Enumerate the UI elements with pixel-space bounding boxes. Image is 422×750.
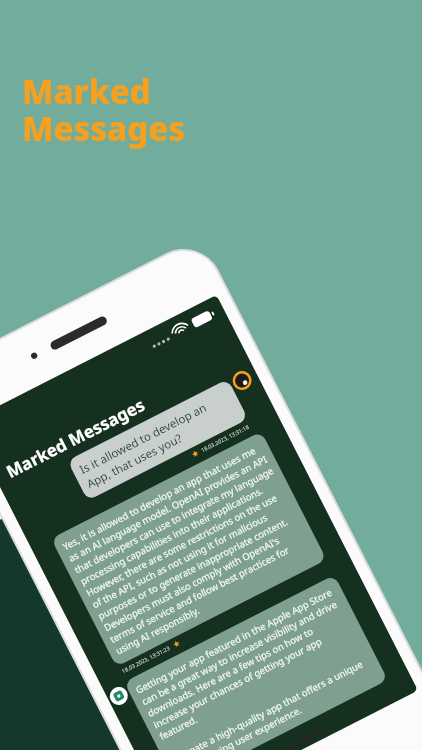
button[interactable]: Marked Messages — chat app promo [0,0,422,750]
